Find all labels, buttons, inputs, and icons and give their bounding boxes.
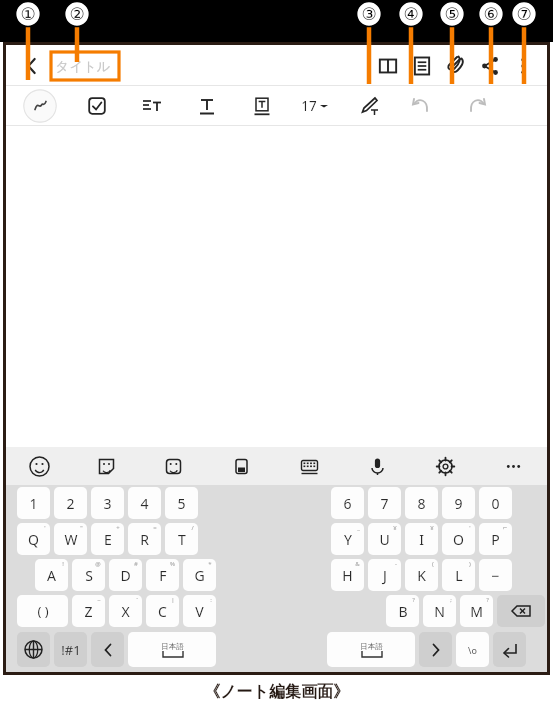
button[interactable]: Undo — [406, 91, 436, 121]
button[interactable]: Text box — [247, 91, 277, 121]
button[interactable]: Y — [331, 523, 364, 555]
button[interactable] — [493, 632, 526, 667]
button[interactable]: W — [54, 523, 87, 555]
button[interactable]: − — [479, 559, 512, 591]
button[interactable]: 17 — [301, 91, 328, 121]
button[interactable]: 7 — [368, 487, 401, 519]
button[interactable]: More — [479, 447, 547, 485]
button[interactable]: Back — [18, 53, 44, 79]
staticText: 3 — [103, 494, 112, 513]
button[interactable]: B — [386, 595, 419, 627]
staticText: K — [417, 566, 426, 585]
button[interactable]: Q — [17, 523, 50, 555]
button[interactable]: Emoji — [6, 447, 73, 485]
button[interactable]: F — [146, 559, 179, 591]
staticText: 8 — [417, 494, 426, 513]
button[interactable]: Sticker — [73, 447, 140, 485]
staticText: 9 — [454, 494, 463, 513]
button[interactable] — [17, 632, 50, 667]
button[interactable]: S — [72, 559, 105, 591]
button[interactable]: 8 — [405, 487, 438, 519]
staticText: B — [398, 602, 408, 621]
staticText: M — [470, 602, 483, 621]
button[interactable]: Share — [473, 49, 507, 83]
button[interactable]: J — [368, 559, 401, 591]
staticText: L — [455, 566, 463, 585]
button[interactable] — [91, 632, 124, 667]
button[interactable]: D — [109, 559, 142, 591]
button[interactable]: I — [405, 523, 438, 555]
button[interactable]: ( ) — [17, 595, 68, 627]
staticText: 日本語 — [360, 642, 383, 651]
button[interactable]: Checklist — [82, 91, 112, 121]
button[interactable]: 1 — [17, 487, 50, 519]
button[interactable]: Clipboard — [207, 447, 275, 485]
button[interactable]: G — [183, 559, 216, 591]
staticText: G — [194, 566, 205, 585]
button[interactable]: L — [442, 559, 475, 591]
staticText: " — [80, 524, 83, 532]
staticText: ④ — [403, 4, 419, 24]
button[interactable]: U — [368, 523, 401, 555]
button[interactable]: 3 — [91, 487, 124, 519]
button[interactable]: Highlight — [354, 91, 384, 121]
staticText: ¥ — [393, 524, 397, 532]
staticText: X — [121, 602, 130, 621]
button[interactable]: V — [183, 595, 216, 627]
staticText: N — [434, 602, 445, 621]
staticText: U — [379, 530, 390, 549]
button[interactable]: N — [423, 595, 456, 627]
button[interactable]: 日本語 — [327, 632, 415, 667]
staticText: 日本語 — [161, 642, 184, 651]
staticText: 5 — [177, 494, 186, 513]
button[interactable]: Reading mode — [371, 49, 405, 83]
button[interactable]: タイトル — [51, 52, 119, 80]
staticText: ② — [69, 4, 85, 24]
button[interactable]: 9 — [442, 487, 475, 519]
button[interactable] — [497, 595, 545, 627]
staticText: \o — [468, 644, 477, 656]
staticText: S — [85, 566, 93, 585]
staticText: _ — [357, 524, 360, 532]
staticText: 《ノート編集画面》 — [204, 682, 349, 702]
button[interactable]: Keyboard mode — [275, 447, 343, 485]
button[interactable]: Emoticon — [140, 447, 207, 485]
button[interactable]: Attach — [439, 49, 473, 83]
button[interactable]: 4 — [128, 487, 161, 519]
button[interactable]: 日本語 — [128, 632, 216, 667]
button[interactable] — [419, 632, 452, 667]
button[interactable]: Pen — [23, 89, 57, 123]
staticText: ¥ — [430, 524, 434, 532]
button[interactable]: C — [146, 595, 179, 627]
button[interactable]: Paragraph style — [137, 91, 167, 121]
button[interactable]: K — [405, 559, 438, 591]
staticText: ? — [486, 596, 489, 604]
button[interactable]: Z — [72, 595, 105, 627]
button[interactable]: 0 — [479, 487, 512, 519]
staticText: ; — [450, 596, 452, 604]
button[interactable]: A — [35, 559, 68, 591]
button[interactable]: E — [91, 523, 124, 555]
button[interactable]: \o — [456, 632, 489, 667]
button[interactable]: M — [460, 595, 493, 627]
button[interactable]: O — [442, 523, 475, 555]
button[interactable]: Voice input — [343, 447, 411, 485]
button[interactable]: Text format — [192, 91, 222, 121]
button[interactable]: P — [479, 523, 512, 555]
button[interactable]: 6 — [331, 487, 364, 519]
button[interactable]: More options — [507, 50, 539, 82]
button[interactable]: R — [128, 523, 161, 555]
button[interactable]: Page view — [405, 49, 439, 83]
button[interactable]: H — [331, 559, 364, 591]
button[interactable]: 2 — [54, 487, 87, 519]
button[interactable]: !#1 — [54, 632, 87, 667]
button[interactable]: Redo — [462, 91, 492, 121]
button[interactable]: T — [165, 523, 198, 555]
staticText: O — [453, 530, 464, 549]
staticText: W — [64, 530, 78, 549]
button[interactable]: 5 — [165, 487, 198, 519]
staticText: I — [419, 530, 424, 549]
button[interactable]: X — [109, 595, 142, 627]
button[interactable]: Settings — [411, 447, 479, 485]
